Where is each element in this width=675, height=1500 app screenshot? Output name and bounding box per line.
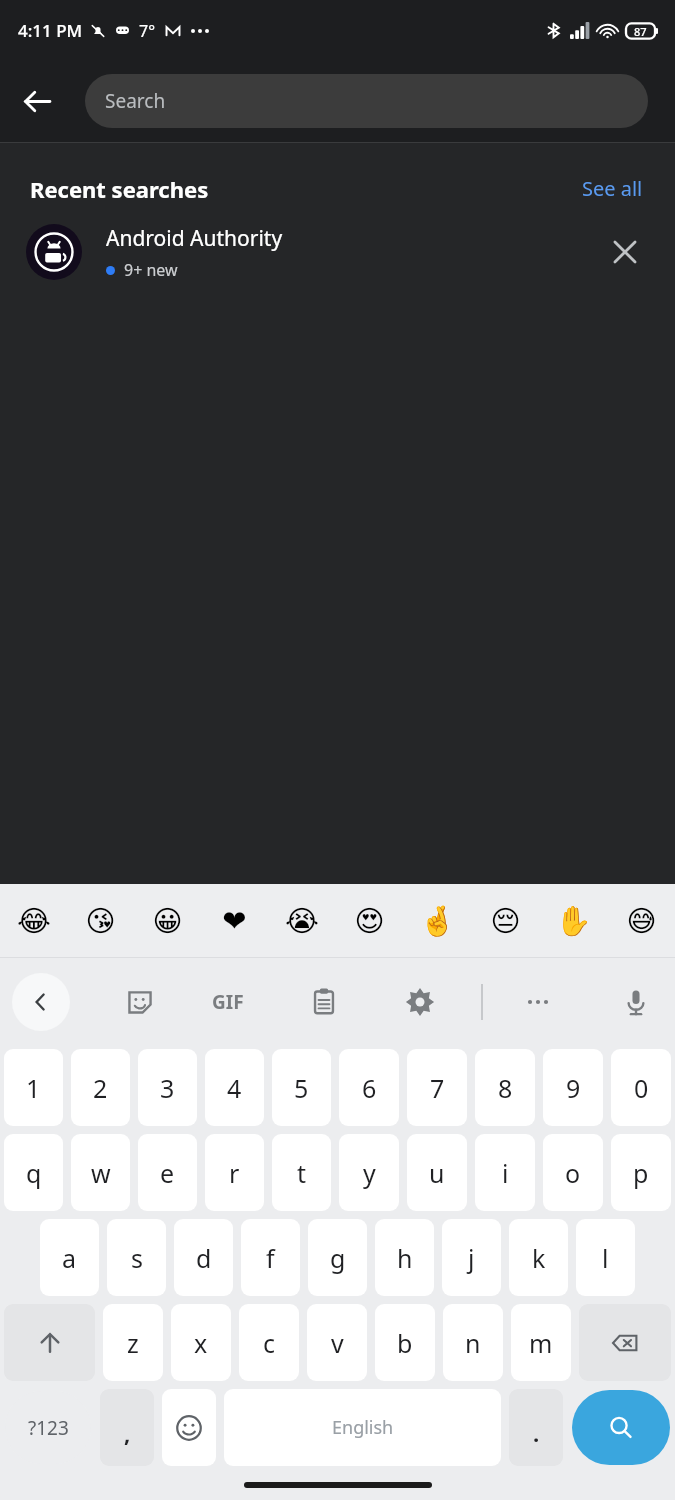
staticText: f xyxy=(266,1241,275,1275)
staticText: See all xyxy=(582,175,643,202)
button[interactable]: Settings xyxy=(390,972,450,1032)
button[interactable]: English xyxy=(224,1389,501,1466)
button[interactable]: 9 xyxy=(543,1049,603,1126)
button[interactable]: z xyxy=(103,1304,163,1381)
staticText: o xyxy=(565,1156,581,1190)
button[interactable]: 7 xyxy=(407,1049,467,1126)
staticText: x xyxy=(194,1326,208,1360)
button[interactable]: g xyxy=(308,1219,367,1296)
button[interactable]: Remove xyxy=(599,226,651,278)
staticText: 😭 xyxy=(285,904,319,938)
button[interactable]: q xyxy=(4,1134,63,1211)
staticText: l xyxy=(602,1241,609,1275)
button[interactable]: GIF xyxy=(196,970,260,1034)
staticText: 0 xyxy=(634,1071,649,1105)
staticText: t xyxy=(297,1156,307,1190)
button[interactable]: u xyxy=(407,1134,467,1211)
button[interactable]: l xyxy=(576,1219,635,1296)
button[interactable]: f xyxy=(241,1219,300,1296)
button[interactable]: 😅 xyxy=(607,884,675,957)
staticText: 🤞 xyxy=(419,904,456,938)
button[interactable]: 2 xyxy=(71,1049,130,1126)
button[interactable]: j xyxy=(442,1219,501,1296)
button[interactable]: 5 xyxy=(272,1049,331,1126)
staticText: 4 xyxy=(227,1071,242,1105)
staticText: b xyxy=(397,1326,413,1360)
button[interactable]: 🤞 xyxy=(403,884,471,957)
button[interactable]: w xyxy=(71,1134,130,1211)
staticText: . xyxy=(533,1418,540,1448)
button[interactable]: m xyxy=(511,1304,571,1381)
button[interactable]: Shift xyxy=(4,1304,95,1381)
button[interactable]: a xyxy=(40,1219,99,1296)
staticText: v xyxy=(331,1326,344,1360)
staticText: h xyxy=(397,1241,413,1275)
button[interactable]: Search xyxy=(85,74,648,128)
button[interactable]: 😔 xyxy=(471,884,539,957)
button[interactable]: Android Authority xyxy=(0,206,675,298)
button[interactable]: ?123 xyxy=(5,1391,91,1464)
button[interactable]: , xyxy=(100,1389,154,1466)
button[interactable]: Back xyxy=(12,973,70,1031)
button[interactable]: v xyxy=(307,1304,367,1381)
button[interactable]: y xyxy=(339,1134,399,1211)
button[interactable]: i xyxy=(475,1134,535,1211)
button[interactable]: x xyxy=(171,1304,231,1381)
staticText: 7° xyxy=(139,20,156,42)
button[interactable]: r xyxy=(205,1134,264,1211)
button[interactable]: b xyxy=(375,1304,435,1381)
button[interactable]: p xyxy=(611,1134,671,1211)
staticText: p xyxy=(633,1156,649,1190)
staticText: 1 xyxy=(26,1071,41,1105)
staticText: 9+ new xyxy=(124,259,178,281)
staticText: m xyxy=(529,1326,553,1360)
button[interactable]: . xyxy=(509,1389,563,1466)
button[interactable]: Emoji xyxy=(162,1389,216,1466)
staticText: k xyxy=(532,1241,546,1275)
staticText: 3 xyxy=(160,1071,175,1105)
button[interactable]: ✋ xyxy=(539,884,607,957)
button[interactable]: s xyxy=(107,1219,166,1296)
staticText: q xyxy=(26,1156,42,1190)
staticText: c xyxy=(263,1326,276,1360)
staticText: 6 xyxy=(362,1071,377,1105)
staticText: 😀 xyxy=(152,904,183,938)
staticText: n xyxy=(465,1326,481,1360)
staticText: Recent searches xyxy=(30,174,209,204)
button[interactable]: o xyxy=(543,1134,603,1211)
button[interactable]: Voice input xyxy=(606,972,666,1032)
button[interactable]: Back xyxy=(8,72,66,130)
staticText: y xyxy=(363,1156,376,1190)
button[interactable]: h xyxy=(375,1219,434,1296)
button[interactable]: 😂 xyxy=(0,884,67,957)
staticText: 9 xyxy=(566,1071,581,1105)
staticText: 😂 xyxy=(17,904,51,938)
button[interactable]: d xyxy=(174,1219,233,1296)
button[interactable]: n xyxy=(443,1304,503,1381)
button[interactable]: e xyxy=(138,1134,197,1211)
button[interactable]: 3 xyxy=(138,1049,197,1126)
button[interactable]: k xyxy=(509,1219,568,1296)
button[interactable]: 😀 xyxy=(134,884,201,957)
button[interactable]: Stickers xyxy=(110,972,170,1032)
staticText: ❤️ xyxy=(222,904,247,938)
button[interactable]: 😭 xyxy=(268,884,335,957)
button[interactable]: 😍 xyxy=(335,884,403,957)
button[interactable]: 8 xyxy=(475,1049,535,1126)
button[interactable]: 6 xyxy=(339,1049,399,1126)
button[interactable]: c xyxy=(239,1304,299,1381)
button[interactable]: 😘 xyxy=(67,884,134,957)
button[interactable]: Backspace xyxy=(579,1304,671,1381)
button[interactable]: Search xyxy=(572,1390,670,1465)
staticText: Search xyxy=(105,88,166,114)
button[interactable]: See all xyxy=(578,171,647,206)
button[interactable]: More options xyxy=(508,972,568,1032)
button[interactable]: 4 xyxy=(205,1049,264,1126)
button[interactable]: t xyxy=(272,1134,331,1211)
button[interactable]: 0 xyxy=(611,1049,671,1126)
button[interactable]: Clipboard xyxy=(294,972,354,1032)
staticText: 😅 xyxy=(626,904,657,938)
button[interactable]: ❤️ xyxy=(201,884,268,957)
button[interactable]: 1 xyxy=(4,1049,63,1126)
staticText: g xyxy=(330,1241,346,1275)
